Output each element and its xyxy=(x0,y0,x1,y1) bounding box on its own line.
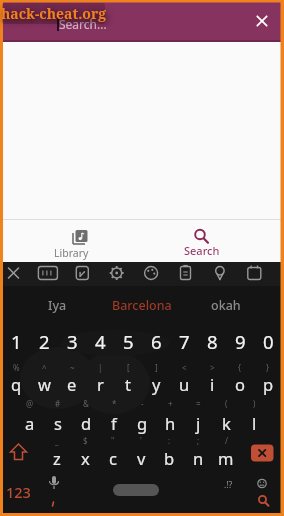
staticText: ] xyxy=(155,362,158,373)
staticText: f xyxy=(111,412,117,434)
staticText: Search xyxy=(184,243,220,257)
button[interactable] xyxy=(40,470,68,510)
button[interactable]: u xyxy=(170,372,198,396)
button[interactable]: okah xyxy=(196,297,256,313)
staticText: 8 xyxy=(207,329,218,354)
button[interactable]: .!? xyxy=(213,478,243,492)
staticText: Search... xyxy=(59,16,107,32)
staticText: g xyxy=(137,412,148,434)
button[interactable]: g xyxy=(128,411,156,435)
staticText: { xyxy=(238,362,242,373)
staticText: $ xyxy=(83,435,88,446)
button[interactable]: a xyxy=(16,411,44,435)
button[interactable]: f xyxy=(100,411,128,435)
button[interactable] xyxy=(0,438,42,476)
button[interactable]: j xyxy=(184,411,212,435)
staticText: 6 xyxy=(151,329,162,354)
button[interactable]: m xyxy=(212,446,240,470)
button[interactable] xyxy=(242,438,284,476)
staticText: ' xyxy=(140,435,142,446)
button[interactable]: 6 xyxy=(142,322,170,360)
button[interactable]: i xyxy=(198,372,226,396)
staticText: z xyxy=(53,447,61,469)
staticText: y xyxy=(152,373,161,395)
button[interactable]: 5 xyxy=(114,322,142,360)
staticText: i xyxy=(210,373,215,395)
button[interactable]: Search... xyxy=(0,0,284,40)
button[interactable] xyxy=(249,8,275,34)
staticText: 0 xyxy=(263,329,274,354)
staticText: 123 xyxy=(6,482,31,502)
staticText: / xyxy=(225,435,228,446)
button[interactable]: v xyxy=(127,446,155,470)
button[interactable]: c xyxy=(99,446,127,470)
button[interactable]: o xyxy=(226,372,254,396)
staticText: q xyxy=(11,373,22,395)
button[interactable]: Barcelona xyxy=(102,297,182,313)
button[interactable]: 1 xyxy=(2,322,30,360)
button[interactable]: 8 xyxy=(198,322,226,360)
staticText: } xyxy=(266,362,270,373)
button[interactable]: q xyxy=(2,372,30,396)
staticText: s xyxy=(54,412,62,434)
button[interactable]: s xyxy=(44,411,72,435)
button[interactable]: Search xyxy=(142,220,284,262)
staticText: h xyxy=(165,412,176,434)
button[interactable]: h xyxy=(156,411,184,435)
staticText: 1 xyxy=(11,329,22,354)
staticText: Library xyxy=(54,246,89,260)
button[interactable]: 2 xyxy=(30,322,58,360)
staticText: = xyxy=(196,398,201,409)
staticText: m xyxy=(218,447,234,469)
button[interactable]: 3 xyxy=(58,322,86,360)
button[interactable]: 123 xyxy=(0,482,36,502)
staticText: p xyxy=(263,373,274,395)
button[interactable]: t xyxy=(114,372,142,396)
button[interactable]: 0 xyxy=(254,322,282,360)
staticText: 3 xyxy=(67,329,78,354)
staticText: % xyxy=(13,362,20,373)
button[interactable]: 4 xyxy=(86,322,114,360)
staticText: > xyxy=(210,362,215,373)
button[interactable]: p xyxy=(254,372,282,396)
button[interactable]: x xyxy=(71,446,99,470)
staticText: l xyxy=(252,412,257,434)
button[interactable]: w xyxy=(30,372,58,396)
button[interactable]: d xyxy=(72,411,100,435)
staticText: k xyxy=(222,412,231,434)
button[interactable]: y xyxy=(142,372,170,396)
button[interactable]: n xyxy=(184,446,212,470)
staticText: w xyxy=(38,373,51,395)
staticText: t xyxy=(125,373,131,395)
button[interactable]: e xyxy=(58,372,86,396)
staticText: & xyxy=(83,398,89,409)
button[interactable] xyxy=(113,484,159,496)
button[interactable]: 9 xyxy=(226,322,254,360)
button[interactable]: r xyxy=(86,372,114,396)
button[interactable]: Library xyxy=(0,220,142,262)
staticText: b xyxy=(164,447,175,469)
button[interactable]: l xyxy=(240,411,268,435)
staticText: ; xyxy=(197,435,200,446)
staticText: .!? xyxy=(224,479,233,491)
button[interactable]: z xyxy=(43,446,71,470)
staticText: x xyxy=(81,447,90,469)
staticText: 4 xyxy=(95,329,106,354)
staticText: ~ xyxy=(70,362,75,373)
staticText: ^ xyxy=(42,362,47,373)
staticText: : xyxy=(168,435,171,446)
button[interactable] xyxy=(248,474,280,514)
staticText: ) xyxy=(253,398,256,409)
button[interactable]: k xyxy=(212,411,240,435)
staticText: _ xyxy=(55,435,59,446)
staticText: * xyxy=(112,398,117,409)
button[interactable]: Iya xyxy=(27,297,87,313)
staticText: 5 xyxy=(123,329,134,354)
staticText: hack-cheat.org xyxy=(1,4,107,23)
staticText: o xyxy=(235,373,245,395)
staticText: Barcelona xyxy=(112,297,172,313)
button[interactable]: 7 xyxy=(170,322,198,360)
button[interactable]: b xyxy=(155,446,183,470)
staticText: d xyxy=(81,412,92,434)
staticText: - xyxy=(141,398,144,409)
